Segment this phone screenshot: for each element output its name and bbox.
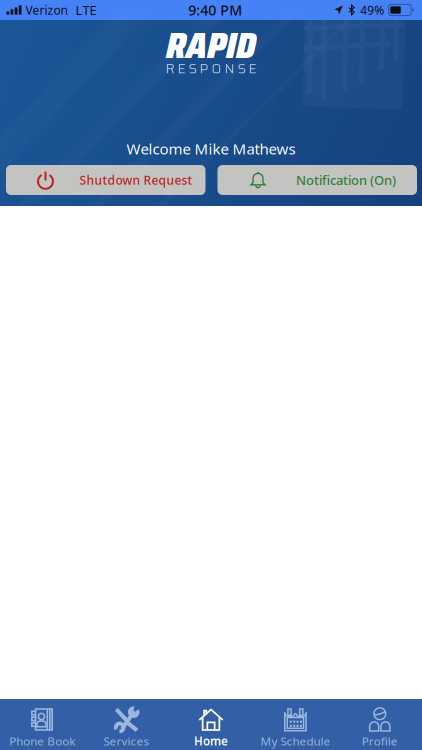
staticText: R E S P O N S E [165,58,256,79]
staticText: Welcome Mike Mathews [126,139,295,159]
staticText: Phone Book [9,733,75,749]
staticText: My Schedule [260,733,330,749]
button[interactable]: Profile [338,699,422,750]
staticText: Notification (On) [296,171,396,189]
staticText: RAPID [166,16,256,74]
button[interactable]: Services [84,699,169,750]
staticText: Services [104,733,150,749]
button[interactable]: My Schedule [253,699,338,750]
staticText: Shutdown Request [79,172,192,188]
button[interactable]: Shutdown Request [6,165,205,195]
staticText: Home [194,733,228,749]
button[interactable]: Notification (On) [217,165,417,195]
staticText: Verizon [25,2,67,18]
staticText: LTE [75,1,96,19]
staticText: Profile [362,733,398,749]
staticText: 9:40 PM [188,0,242,20]
staticText: 49% [360,2,384,18]
button[interactable]: Home [169,699,253,750]
button[interactable]: Phone Book [0,699,84,750]
